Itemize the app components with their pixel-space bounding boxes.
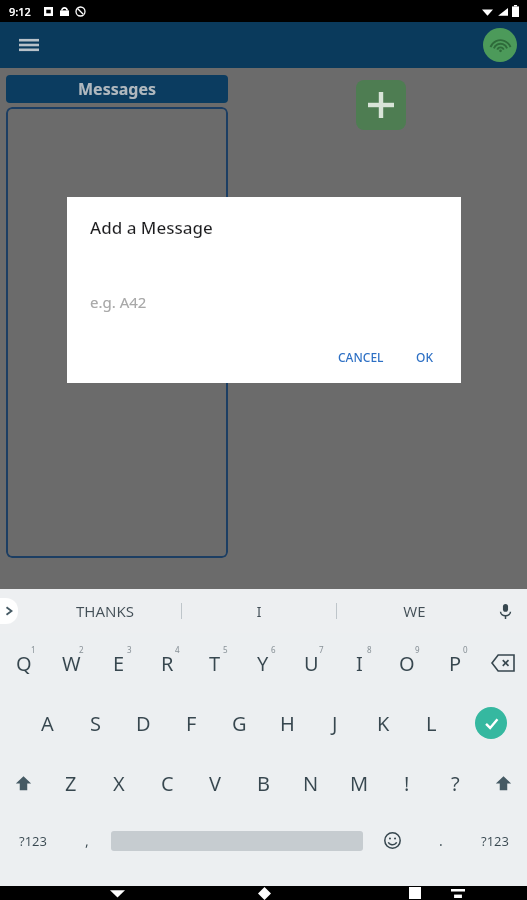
staticText: e.g. A42 [90, 292, 147, 312]
staticText: C [161, 770, 174, 797]
staticText: ?123 [481, 832, 509, 850]
button[interactable]: G [215, 693, 263, 753]
button[interactable]: Back [100, 886, 134, 900]
staticText: I [356, 650, 363, 677]
staticText: Y [257, 650, 269, 677]
button[interactable]: V [191, 753, 239, 813]
staticText: F [186, 710, 197, 737]
staticText: T [209, 650, 221, 677]
button[interactable]: Shift [479, 753, 527, 813]
button[interactable]: CANCEL [330, 343, 392, 371]
button[interactable]: Z [47, 753, 95, 813]
staticText: Q [16, 650, 32, 677]
staticText: U [304, 650, 319, 677]
staticText: Z [65, 770, 77, 797]
button[interactable]: ? [431, 753, 479, 813]
button[interactable]: I [182, 589, 336, 633]
button[interactable]: Enter [455, 693, 527, 753]
staticText: 2 [79, 644, 84, 655]
button[interactable]: Messages [6, 75, 228, 103]
button[interactable]: Connection status [483, 28, 517, 62]
staticText: . [439, 831, 443, 850]
staticText: M [350, 770, 369, 797]
button[interactable]: I [335, 633, 383, 693]
staticText: N [303, 770, 319, 797]
staticText: ?123 [19, 832, 47, 850]
staticText: I [256, 601, 262, 621]
staticText: 7 [319, 644, 324, 655]
button[interactable]: THANKS [28, 589, 181, 633]
staticText: D [136, 710, 151, 737]
button[interactable]: J [311, 693, 359, 753]
staticText: B [257, 770, 270, 797]
button[interactable]: L [407, 693, 455, 753]
button[interactable]: D [119, 693, 167, 753]
button[interactable]: , [65, 813, 109, 868]
staticText: WE [403, 601, 426, 621]
staticText: E [113, 650, 125, 677]
button[interactable]: Y [239, 633, 287, 693]
button[interactable]: ?123 [0, 813, 65, 868]
button[interactable]: ! [383, 753, 431, 813]
button[interactable]: S [71, 693, 119, 753]
staticText: P [449, 650, 462, 677]
button[interactable]: Home [247, 886, 281, 900]
staticText: K [377, 710, 390, 737]
button[interactable]: . [419, 813, 463, 868]
button[interactable]: Voice input [491, 597, 519, 625]
button[interactable]: B [239, 753, 287, 813]
staticText: R [161, 650, 174, 677]
staticText: A [41, 710, 54, 737]
staticText: J [332, 710, 338, 737]
button[interactable]: P [431, 633, 479, 693]
staticText: 4 [175, 644, 180, 655]
staticText: H [280, 710, 295, 737]
button[interactable]: Shift [0, 753, 47, 813]
button[interactable]: Q [0, 633, 47, 693]
button[interactable]: WE [337, 589, 491, 633]
staticText: 6 [271, 644, 276, 655]
button[interactable]: U [287, 633, 335, 693]
button[interactable]: Switch keyboard [444, 886, 472, 900]
button[interactable]: C [143, 753, 191, 813]
button[interactable]: N [287, 753, 335, 813]
button[interactable]: M [335, 753, 383, 813]
staticText: 9 [415, 644, 420, 655]
button[interactable]: Recent apps [398, 886, 432, 900]
staticText: , [85, 831, 89, 850]
button[interactable]: Backspace [479, 633, 527, 693]
staticText: S [90, 710, 101, 737]
staticText: G [232, 710, 247, 737]
staticText: ! [404, 770, 410, 797]
staticText: 5 [223, 644, 228, 655]
staticText: X [113, 770, 125, 797]
button[interactable]: K [359, 693, 407, 753]
button[interactable]: H [263, 693, 311, 753]
button[interactable]: ?123 [463, 813, 527, 868]
button[interactable]: Open navigation menu [12, 28, 46, 62]
button[interactable]: Emoji [365, 813, 419, 868]
staticText: L [426, 710, 437, 737]
button[interactable]: E [95, 633, 143, 693]
button[interactable]: R [143, 633, 191, 693]
staticText: 9:12 [9, 4, 31, 19]
button[interactable]: OK [408, 343, 441, 371]
button[interactable]: A [23, 693, 71, 753]
button[interactable]: e.g. A42 [90, 292, 438, 322]
staticText: OK [416, 349, 433, 365]
button[interactable]: O [383, 633, 431, 693]
button[interactable]: F [167, 693, 215, 753]
button[interactable]: W [47, 633, 95, 693]
button[interactable]: Add a message [356, 80, 406, 130]
button[interactable]: X [95, 753, 143, 813]
button[interactable]: Expand toolbar [0, 598, 18, 624]
staticText: W [62, 650, 81, 677]
staticText: CANCEL [338, 349, 384, 365]
staticText: V [209, 770, 221, 797]
staticText: THANKS [76, 601, 134, 621]
staticText: Messages [78, 78, 156, 100]
button[interactable]: T [191, 633, 239, 693]
staticText: 8 [367, 644, 372, 655]
button[interactable]: Space [109, 813, 365, 868]
staticText: 0 [463, 644, 468, 655]
